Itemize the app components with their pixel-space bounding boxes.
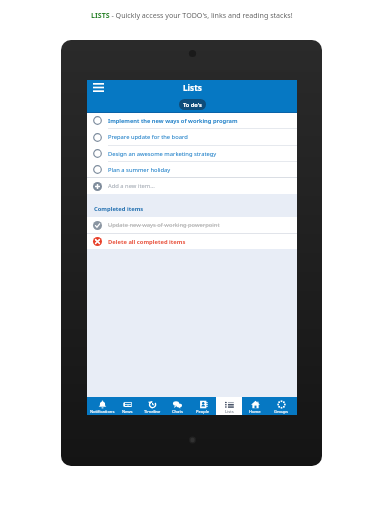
staticText: Notifications — [90, 409, 115, 415]
staticText: Completed items — [94, 205, 144, 213]
button[interactable]: Home — [242, 397, 268, 415]
button[interactable]: Menu — [89, 78, 107, 96]
staticText: Plan a summer holiday — [108, 166, 171, 174]
button[interactable]: News — [115, 397, 140, 415]
button[interactable]: Lists — [216, 397, 242, 415]
button[interactable]: Notifications — [90, 397, 115, 415]
button[interactable]: Timeline — [140, 397, 165, 415]
staticText: Lists — [225, 409, 234, 415]
button[interactable]: Chats — [165, 397, 190, 415]
button[interactable]: Design an awesome marketing strategy — [87, 146, 297, 161]
staticText: Groups — [274, 409, 289, 415]
staticText: Add a new item... — [108, 182, 155, 190]
staticText: Timeline — [144, 409, 161, 415]
staticText: Chats — [172, 409, 183, 415]
staticText: People — [196, 409, 210, 415]
staticText: News — [122, 409, 133, 415]
staticText: Update new ways of working powerpoint — [108, 221, 220, 229]
button[interactable]: Update new ways of working powerpoint — [87, 217, 297, 233]
staticText: Lists — [183, 82, 202, 93]
staticText: LISTS - Quickly access your TODO's, link… — [91, 10, 293, 20]
staticText: Implement the new ways of working progra… — [108, 117, 238, 125]
button[interactable]: Add a new item... — [87, 178, 297, 194]
staticText: To do's — [183, 101, 202, 109]
button[interactable]: People — [190, 397, 216, 415]
staticText: Design an awesome marketing strategy — [108, 150, 217, 158]
button[interactable]: Implement the new ways of working progra… — [87, 113, 297, 128]
staticText: Delete all completed items — [108, 238, 186, 246]
button[interactable]: Groups — [268, 397, 294, 415]
button[interactable]: Delete all completed items — [87, 234, 297, 249]
staticText: Prepare update for the board — [108, 133, 188, 141]
button[interactable]: Prepare update for the board — [87, 129, 297, 145]
staticText: Home — [249, 409, 261, 415]
button[interactable]: To do's — [179, 99, 206, 110]
button[interactable]: Plan a summer holiday — [87, 162, 297, 177]
